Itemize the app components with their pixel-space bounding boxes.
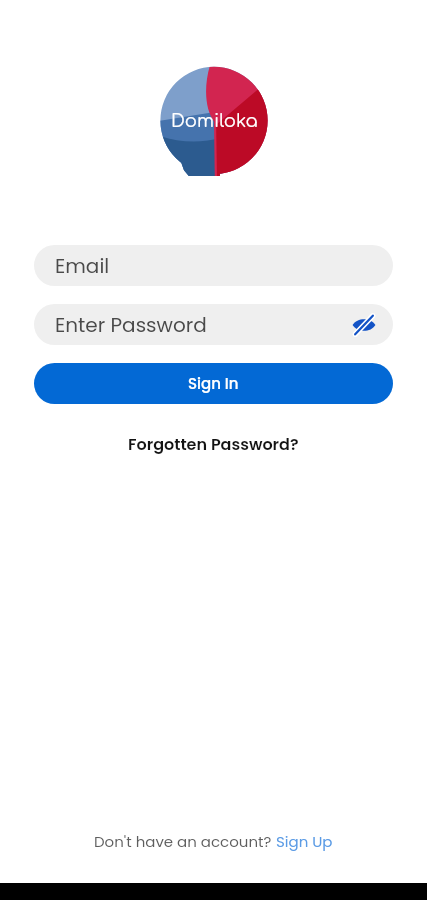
button[interactable]: Enter Password (34, 304, 393, 345)
staticText: Don't have an account? (94, 831, 276, 852)
staticText: Domiloka (171, 111, 258, 131)
button[interactable]: Toggle password visibility (349, 310, 379, 340)
staticText: Enter Password (55, 311, 349, 339)
button[interactable]: Forgotten Password? (118, 429, 309, 459)
button[interactable]: Email (34, 245, 393, 286)
button[interactable]: Sign In (34, 363, 393, 404)
staticText: Sign Up (276, 831, 333, 852)
staticText: Sign In (188, 373, 239, 394)
button[interactable]: Sign Up (276, 831, 333, 852)
staticText: Forgotten Password? (128, 433, 299, 455)
staticText: Email (55, 252, 110, 280)
